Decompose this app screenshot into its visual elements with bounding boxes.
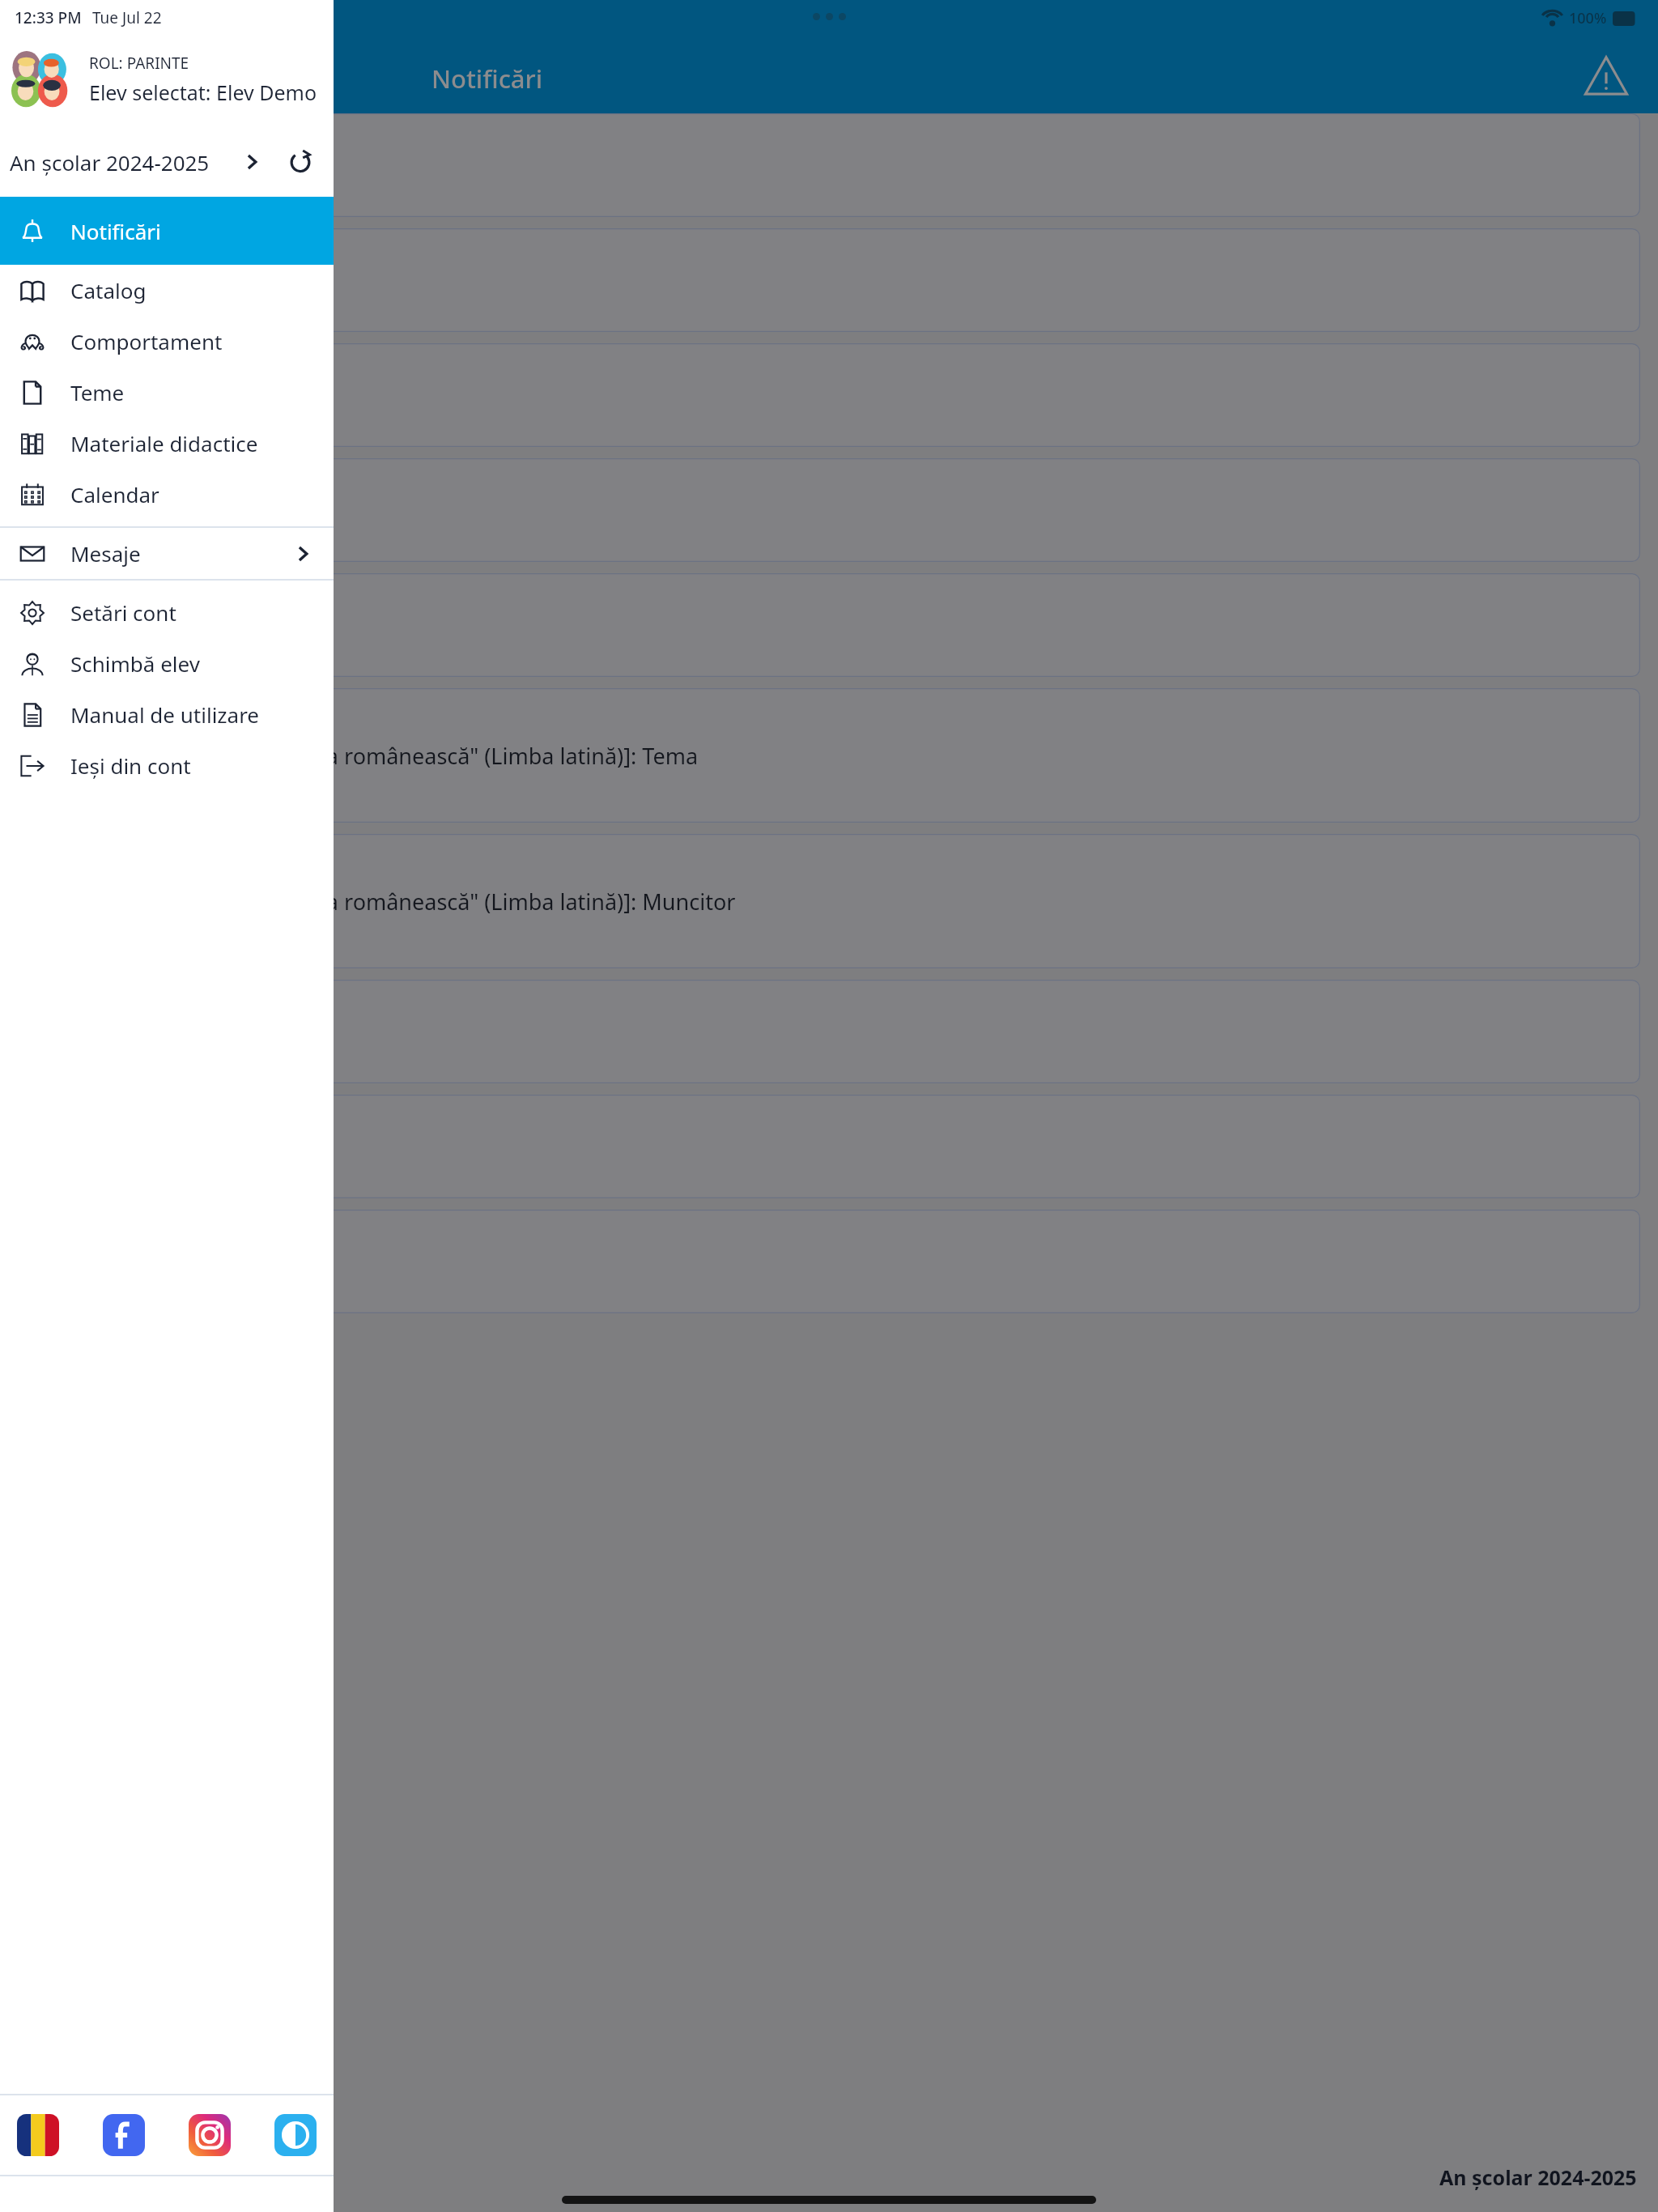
button[interactable]: ]: Nerespectuos	[18, 343, 1640, 447]
staticText: Materiale didactice	[70, 429, 258, 457]
button[interactable]: Catalog	[0, 265, 334, 316]
staticText: Teme	[70, 378, 125, 406]
staticText: Tue Jul 22	[92, 7, 162, 28]
staticText: An școlar 2024-2025	[10, 148, 210, 177]
staticText: ]: Tinuta neadecvata	[18, 496, 226, 525]
staticText: ]: Activ la ora	[18, 266, 150, 296]
staticText: Mesaje	[70, 539, 141, 568]
button[interactable]: Mesaje	[0, 528, 334, 579]
button[interactable]: : Creativ	[18, 1095, 1640, 1198]
button[interactable]: cini latine în cultura și civilizația ro…	[18, 834, 1640, 968]
staticText: ROL: PARINTE	[89, 53, 189, 74]
button[interactable]: Refresh	[280, 142, 321, 182]
button[interactable]: : Optimist si increzator	[18, 1210, 1640, 1313]
button[interactable]: cini latine în cultura și civilizația ro…	[18, 688, 1640, 823]
staticText: Comportament	[70, 327, 223, 355]
button[interactable]: ]: Tinuta neadecvata	[18, 458, 1640, 562]
button[interactable]: Ieși din cont	[0, 740, 334, 791]
button[interactable]: Facebook	[99, 2110, 149, 2160]
staticText: Ieși din cont	[70, 751, 191, 780]
staticText: Elev selectat: Elev Demo	[89, 79, 317, 106]
button[interactable]: : Muncitor	[18, 980, 1640, 1083]
staticText: An școlar 2024-2025	[1439, 2163, 1637, 2191]
button[interactable]: Materiale didactice	[0, 418, 334, 469]
staticText: ]: Optimist si increzator	[18, 610, 256, 640]
button[interactable]: ]: Optimist si increzator	[18, 573, 1640, 677]
staticText: ]: Nerespectuos	[18, 381, 179, 410]
button[interactable]: An școlar 2024-2025	[0, 138, 334, 185]
button[interactable]: Calendar	[0, 469, 334, 520]
staticText: 12:33 PM	[15, 7, 82, 28]
staticText: Catalog	[70, 276, 147, 304]
button[interactable]: Setări cont	[0, 587, 334, 638]
button[interactable]: Manual de utilizare	[0, 689, 334, 740]
staticText: 100%	[1569, 8, 1607, 28]
staticText: Notificări	[70, 217, 161, 245]
button[interactable]: Schimbă elev	[0, 638, 334, 689]
staticText: cini latine în cultura și civilizația ro…	[18, 887, 736, 917]
staticText: ]: Autodidact	[18, 151, 149, 181]
button[interactable]: ]: Activ la ora	[18, 228, 1640, 332]
staticText: cini latine în cultura și civilizația ro…	[18, 741, 699, 771]
button[interactable]: Select school year	[233, 143, 270, 181]
button[interactable]: Contrast mode	[270, 2110, 321, 2160]
button[interactable]: ]: Autodidact	[18, 113, 1640, 217]
button[interactable]: Alerts	[1575, 45, 1637, 107]
button[interactable]: Instagram	[185, 2110, 235, 2160]
button[interactable]: Teme	[0, 367, 334, 418]
button[interactable]: Comportament	[0, 316, 334, 367]
button[interactable]: Language Romanian	[13, 2110, 63, 2160]
staticText: Notificări	[432, 62, 543, 96]
staticText: Setări cont	[70, 598, 176, 627]
staticText: Manual de utilizare	[70, 700, 260, 729]
staticText: Schimbă elev	[70, 649, 200, 678]
staticText: Calendar	[70, 480, 159, 508]
button[interactable]: Notificări	[0, 197, 334, 265]
